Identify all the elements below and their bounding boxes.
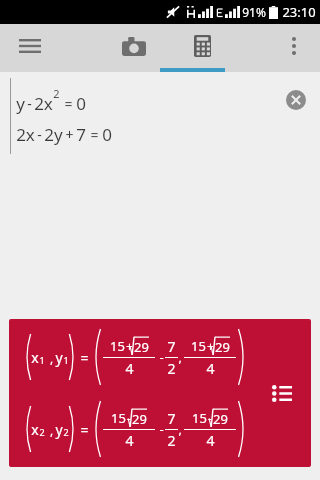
staticText: = xyxy=(90,125,99,144)
staticText: 4 xyxy=(206,359,215,378)
staticText: 29 xyxy=(134,338,149,356)
button[interactable]: Clear xyxy=(280,84,312,116)
staticText: - xyxy=(208,410,212,426)
button[interactable]: Calculator xyxy=(170,24,234,68)
staticText: 7 xyxy=(167,409,176,428)
staticText: 4 xyxy=(125,359,134,378)
staticText: - xyxy=(127,410,131,426)
staticText: = xyxy=(80,420,89,439)
staticText: , xyxy=(178,349,182,365)
staticText: 2 xyxy=(63,426,69,438)
staticText: y xyxy=(55,348,63,367)
staticText: 91% xyxy=(242,4,266,20)
staticText: 15 xyxy=(191,337,206,355)
staticText: 15 xyxy=(192,409,207,427)
staticText: 7 xyxy=(76,123,86,146)
staticText: 2 xyxy=(39,426,45,438)
staticText: 23:10 xyxy=(282,3,316,21)
staticText: y xyxy=(16,92,25,115)
staticText: 4 xyxy=(125,431,134,450)
staticText: 1 xyxy=(39,354,45,366)
staticText: 2x xyxy=(16,123,35,146)
staticText: x xyxy=(31,348,39,367)
staticText: 2 xyxy=(53,86,60,101)
staticText: x xyxy=(31,420,39,439)
staticText: + xyxy=(207,338,214,354)
staticText: 7 xyxy=(167,337,176,356)
button[interactable]: Show steps xyxy=(265,376,299,410)
staticText: - xyxy=(27,94,32,113)
staticText: , xyxy=(45,422,55,438)
staticText: 29 xyxy=(213,410,228,428)
staticText: 2y xyxy=(44,123,63,146)
staticText: 15 xyxy=(111,409,126,427)
staticText: - xyxy=(159,348,164,366)
staticText: 4 xyxy=(206,431,215,450)
button[interactable]: More options xyxy=(274,24,314,68)
staticText: + xyxy=(65,125,74,144)
staticText: , xyxy=(178,421,182,437)
staticText: 2x xyxy=(34,92,53,115)
staticText: y xyxy=(55,420,63,439)
staticText: - xyxy=(37,125,42,144)
staticText: , xyxy=(45,350,55,366)
staticText: 2 xyxy=(167,359,176,378)
staticText: 0 xyxy=(102,123,112,146)
button[interactable]: Camera xyxy=(108,24,160,68)
button[interactable]: Menu xyxy=(8,24,52,68)
button[interactable]: x xyxy=(9,319,311,467)
staticText: = xyxy=(64,94,73,113)
staticText: 1 xyxy=(63,354,69,366)
staticText: 15 xyxy=(110,337,125,355)
staticText: - xyxy=(159,420,164,438)
staticText: + xyxy=(126,338,133,354)
staticText: 29 xyxy=(215,338,230,356)
staticText: = xyxy=(80,348,89,367)
staticText: 0 xyxy=(76,92,86,115)
staticText: 2 xyxy=(167,431,176,450)
staticText: 29 xyxy=(132,410,147,428)
